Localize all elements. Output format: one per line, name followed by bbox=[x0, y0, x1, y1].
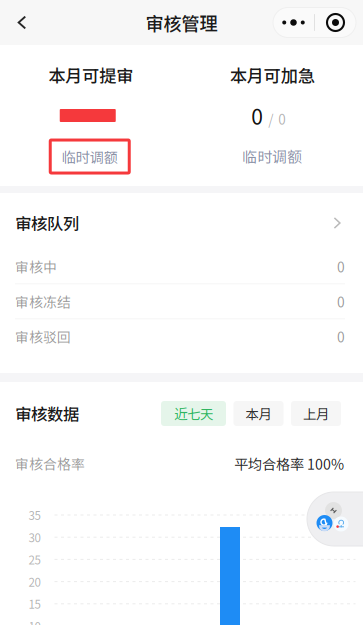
staticText: 10 bbox=[28, 618, 40, 625]
staticText: 0 bbox=[278, 109, 285, 128]
button[interactable]: 临时调额 bbox=[50, 140, 129, 173]
staticText: 审核中 bbox=[15, 256, 57, 276]
staticText: 临时调额 bbox=[62, 146, 118, 167]
button[interactable]: 审核冻结 bbox=[0, 284, 363, 319]
staticText: 审核驳回 bbox=[15, 326, 71, 346]
staticText: 审核合格率 bbox=[15, 453, 85, 473]
staticText: 35 bbox=[28, 507, 40, 523]
button[interactable]: 本月 bbox=[233, 401, 283, 426]
button[interactable]: 审核驳回 bbox=[0, 319, 363, 354]
button[interactable]: 近七天 bbox=[161, 401, 226, 426]
staticText: 30 bbox=[28, 529, 40, 546]
staticText: 0 bbox=[251, 100, 263, 131]
staticText: 平均合格率 100% bbox=[234, 453, 344, 474]
staticText: 审核数据 bbox=[15, 402, 79, 425]
staticText: / bbox=[268, 109, 273, 128]
staticText: 审核冻结 bbox=[15, 291, 71, 311]
staticText: 0 bbox=[337, 256, 345, 276]
staticText: 25 bbox=[28, 551, 40, 568]
staticText: 近七天 bbox=[174, 404, 213, 423]
staticText: 15 bbox=[28, 595, 40, 612]
button[interactable]: 审核中 bbox=[0, 249, 363, 284]
staticText: 本月可提审 bbox=[48, 62, 133, 87]
staticText: 0 bbox=[337, 291, 345, 311]
staticText: 临时调额 bbox=[242, 145, 302, 167]
staticText: 20 bbox=[28, 573, 40, 590]
staticText: 0 bbox=[337, 326, 345, 346]
button[interactable]: 更多 bbox=[273, 7, 356, 37]
button[interactable]: 返回 bbox=[0, 0, 44, 45]
staticText: 审核管理 bbox=[145, 9, 217, 36]
button[interactable]: 审核队列 bbox=[0, 196, 363, 249]
staticText: 本月 bbox=[245, 404, 271, 423]
button[interactable]: 上月 bbox=[291, 401, 341, 426]
staticText: 审核队列 bbox=[15, 211, 79, 235]
staticText: 上月 bbox=[303, 404, 329, 423]
button[interactable]: 客服 bbox=[307, 492, 363, 546]
staticText: 本月可加急 bbox=[230, 62, 315, 87]
button[interactable]: 临时调额 bbox=[242, 147, 302, 165]
